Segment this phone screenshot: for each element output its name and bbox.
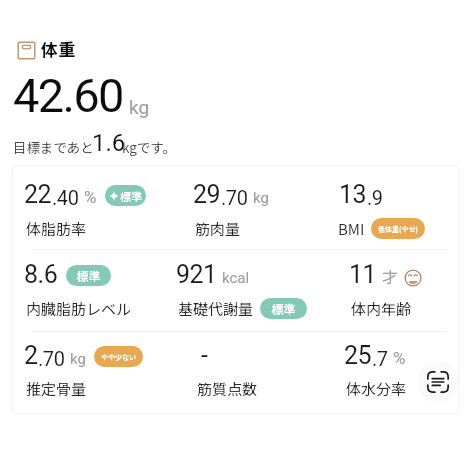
staticText: やや少ない: [101, 352, 136, 362]
staticText: 標準: [76, 267, 101, 284]
button[interactable]: 標準: [105, 185, 146, 206]
button[interactable]: 体重: [17, 41, 75, 66]
staticText: 標準: [120, 188, 142, 204]
staticText: 基礎代謝量: [178, 298, 254, 320]
staticText: -: [201, 341, 208, 370]
staticText: 体内年齢: [351, 298, 412, 320]
staticText: 921: [176, 260, 217, 289]
staticText: 低体重(やせ): [378, 224, 418, 234]
button[interactable]: やや少ない: [94, 346, 143, 367]
staticText: 体重: [41, 36, 75, 61]
staticText: BMI: [338, 218, 365, 240]
staticText: 内臓脂肪レベル: [26, 298, 132, 320]
staticText: 目標まであと: [13, 137, 94, 157]
staticText: %: [84, 187, 97, 207]
staticText: .70: [221, 186, 248, 209]
staticText: 13: [339, 180, 367, 209]
staticText: 筋質点数: [197, 378, 258, 400]
staticText: 8.6: [24, 260, 58, 289]
staticText: 推定骨量: [26, 378, 87, 400]
staticText: 筋肉量: [195, 218, 241, 240]
staticText: 1.6: [92, 129, 126, 157]
button[interactable]: 標準: [260, 298, 307, 319]
staticText: kg: [129, 96, 150, 118]
button[interactable]: 標準: [66, 265, 111, 286]
staticText: 才: [382, 264, 399, 287]
staticText: .7: [372, 347, 388, 370]
staticText: 11: [349, 260, 377, 289]
staticText: kg: [253, 189, 269, 207]
staticText: 25: [344, 341, 372, 370]
staticText: %: [393, 348, 406, 368]
staticText: 2: [24, 341, 38, 370]
button[interactable]: 低体重(やせ): [371, 218, 425, 239]
staticText: 標準: [271, 300, 296, 317]
staticText: kgです。: [122, 137, 177, 157]
staticText: .70: [38, 347, 65, 370]
staticText: 22: [24, 180, 52, 209]
staticText: 42.60: [13, 68, 123, 123]
staticText: 29: [193, 180, 221, 209]
staticText: .40: [52, 186, 79, 209]
button[interactable]: Scan text: [417, 361, 459, 403]
staticText: kg: [70, 350, 86, 368]
staticText: 体水分率: [346, 378, 407, 400]
staticText: 体脂肪率: [26, 218, 87, 240]
staticText: kcal: [222, 269, 250, 287]
staticText: .9: [367, 186, 383, 209]
